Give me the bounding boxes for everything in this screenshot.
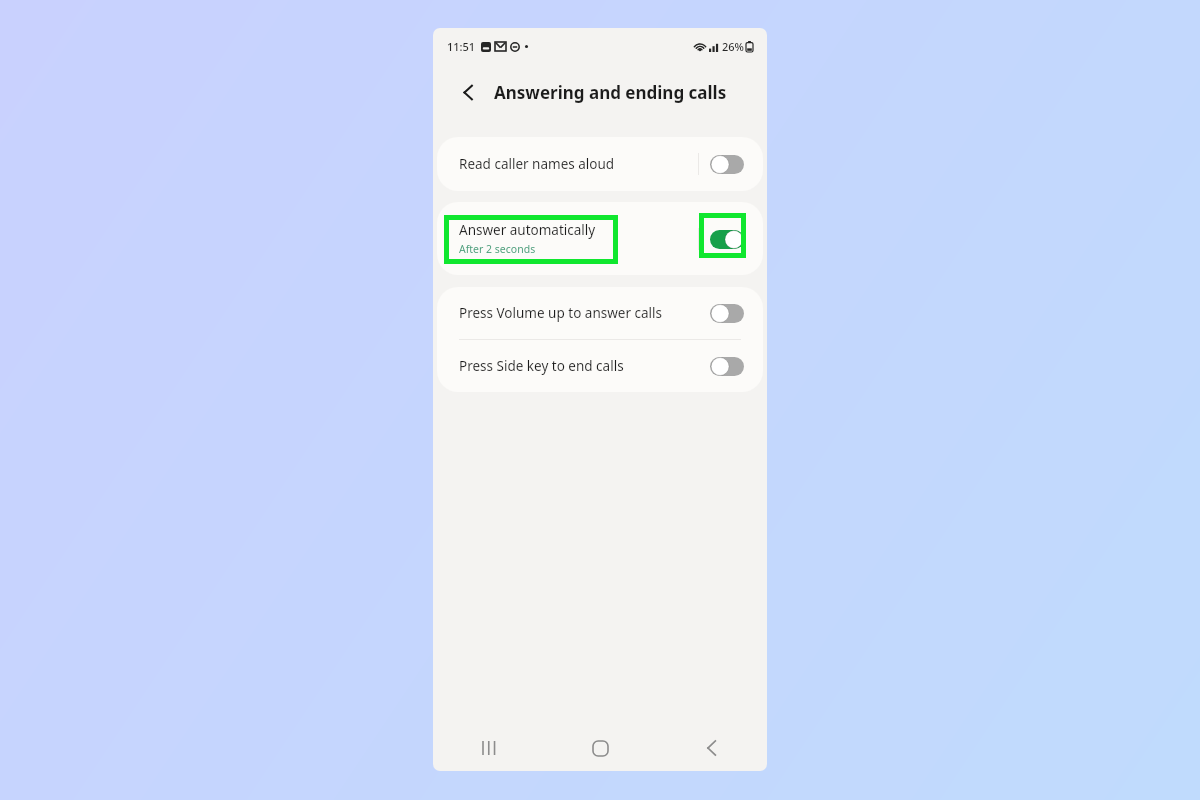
- staticText: Answer automatically: [459, 221, 596, 239]
- button[interactable]: Press Volume up to answer calls: [709, 298, 745, 328]
- staticText: 11:51: [447, 39, 476, 54]
- staticText: Press Volume up to answer calls: [459, 304, 662, 322]
- staticText: Press Side key to end calls: [459, 357, 624, 375]
- button[interactable]: Back: [455, 79, 481, 105]
- button[interactable]: Press Side key to end calls: [437, 340, 763, 392]
- button[interactable]: Read caller names aloud: [709, 149, 745, 179]
- button[interactable]: Press Volume up to answer calls: [437, 287, 763, 339]
- button[interactable]: Home: [545, 725, 656, 771]
- button[interactable]: Read caller names aloud: [437, 137, 763, 191]
- staticText: Read caller names aloud: [459, 155, 615, 173]
- button[interactable]: Answer automatically: [437, 202, 763, 275]
- button[interactable]: Recent apps: [433, 725, 545, 771]
- staticText: After 2 seconds: [459, 242, 536, 256]
- button[interactable]: Back: [656, 725, 767, 771]
- button[interactable]: Press Side key to end calls: [709, 351, 745, 381]
- staticText: 26%: [722, 39, 744, 54]
- button[interactable]: Answer automatically: [709, 224, 745, 254]
- staticText: Answering and ending calls: [494, 81, 727, 104]
